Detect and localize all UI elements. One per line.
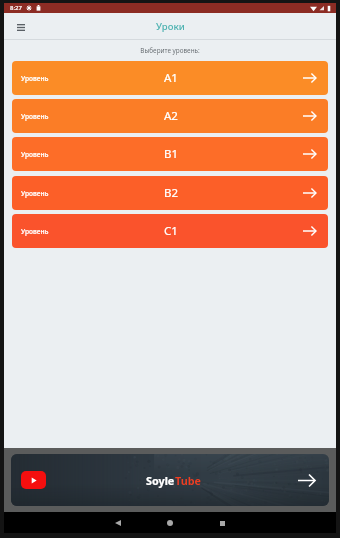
staticText: B1 (164, 146, 179, 162)
staticText: Уроки (156, 20, 185, 33)
staticText: Уровень (21, 227, 49, 236)
staticText: Уровень (21, 189, 49, 198)
button[interactable]: Home (160, 513, 180, 533)
button[interactable]: Уровень (12, 61, 328, 95)
staticText: Tube (175, 473, 201, 488)
staticText: 8:27 (10, 4, 22, 12)
button[interactable]: Уровень (12, 214, 328, 248)
staticText: Уровень (21, 150, 49, 159)
staticText: Soyle (146, 473, 175, 488)
staticText: Выберите уровень: (4, 46, 336, 55)
button[interactable]: Soyle (11, 454, 329, 506)
staticText: A1 (164, 70, 178, 86)
staticText: B2 (164, 185, 179, 201)
button[interactable]: Recents (212, 513, 232, 533)
button[interactable]: Уровень (12, 137, 328, 171)
staticText: Уровень (21, 112, 49, 121)
button[interactable]: Уровень (12, 99, 328, 133)
button[interactable]: Menu (12, 18, 30, 36)
staticText: A2 (164, 108, 178, 124)
staticText: Уровень (21, 74, 49, 83)
staticText: C1 (164, 223, 178, 239)
button[interactable]: Back (108, 513, 128, 533)
button[interactable]: Уровень (12, 176, 328, 210)
